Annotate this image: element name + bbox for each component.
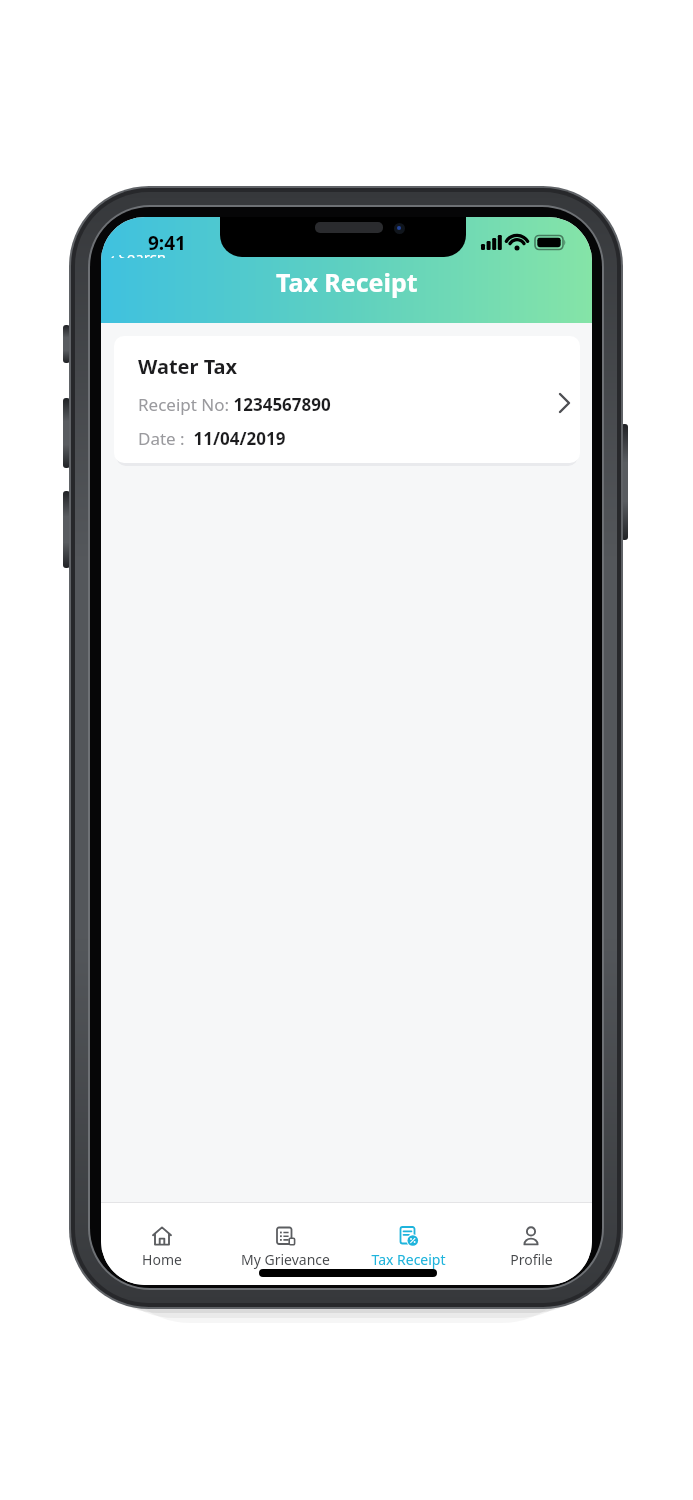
staticText: Tax Receipt (371, 1250, 446, 1269)
staticText: Tax Receipt (276, 265, 418, 299)
staticText: Water Tax (138, 353, 238, 380)
staticText: Date : 11/04/2019 (138, 427, 286, 450)
button[interactable]: Home (101, 1218, 223, 1278)
button[interactable]: My Grievance (224, 1218, 346, 1278)
button[interactable]: Tax Receipt (347, 1218, 469, 1278)
button[interactable]: Profile (470, 1218, 592, 1278)
staticText: Home (142, 1250, 182, 1269)
staticText: ‹ Search (110, 255, 167, 258)
staticText: My Grievance (241, 1250, 330, 1269)
staticText: 9:41 (148, 230, 186, 256)
staticText: Profile (510, 1250, 553, 1269)
button[interactable]: Water Tax (114, 336, 580, 463)
staticText: Receipt No: 1234567890 (138, 393, 331, 416)
